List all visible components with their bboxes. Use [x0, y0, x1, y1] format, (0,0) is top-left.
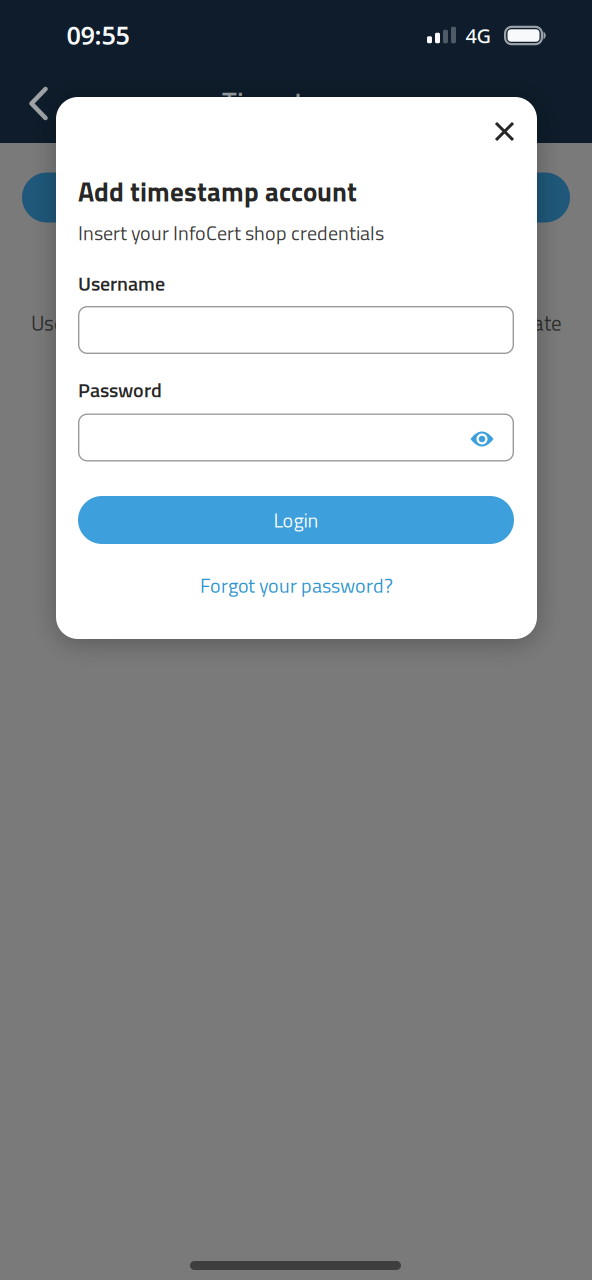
staticText: User [31, 307, 72, 339]
staticText: Expiration date [428, 307, 562, 339]
staticText: Timestamps [222, 80, 369, 123]
button[interactable]: Forgot your password? [200, 570, 393, 600]
button[interactable]: Show password [460, 421, 503, 456]
button[interactable]: Login [78, 496, 514, 544]
staticText: Forgot your password? [200, 570, 393, 600]
staticText: Login [273, 505, 318, 535]
staticText: 4G [465, 22, 491, 49]
button[interactable]: Password [78, 413, 514, 461]
staticText: Add timestamp account [78, 171, 357, 212]
staticText: Insert your InfoCert shop credentials [78, 217, 384, 248]
button[interactable]: Close [484, 111, 525, 152]
staticText: Username [78, 268, 165, 298]
staticText: 09:55 [66, 18, 129, 52]
staticText: Password [78, 374, 162, 405]
button[interactable]: Back [15, 76, 63, 130]
button[interactable]: Username [78, 306, 514, 354]
